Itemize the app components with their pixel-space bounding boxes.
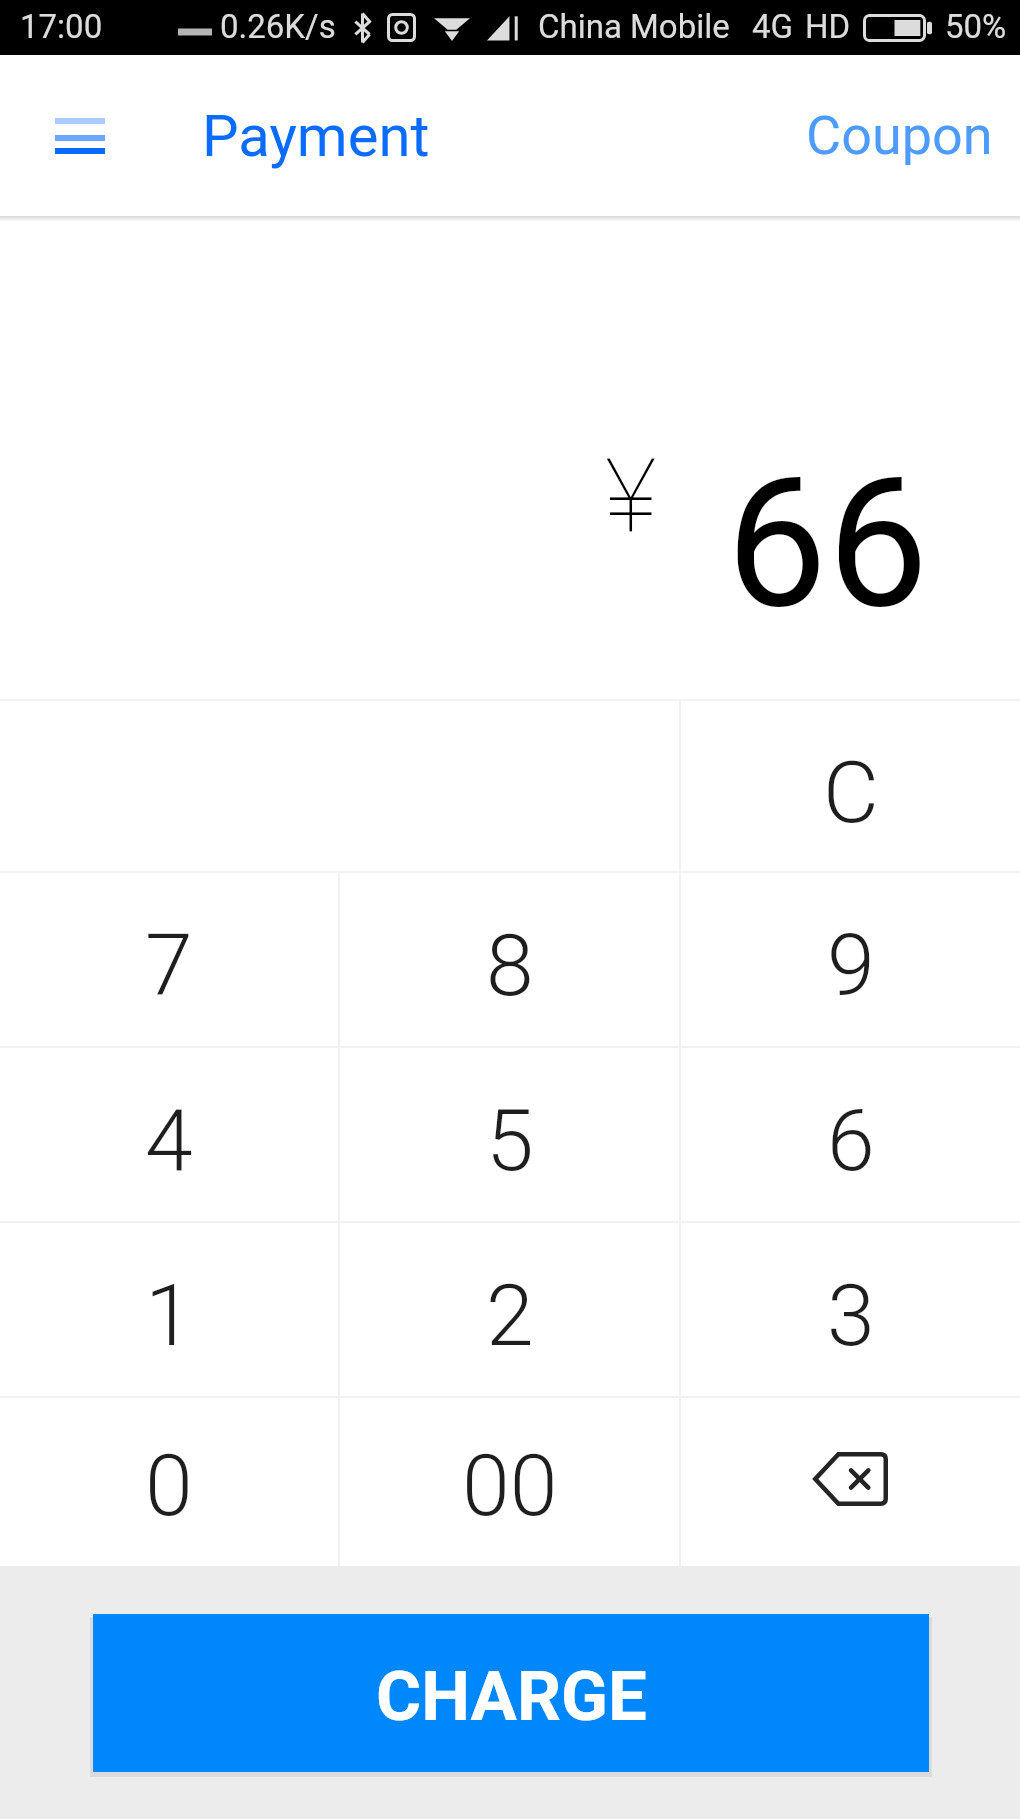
button[interactable]: C (681, 701, 1020, 871)
staticText: 8 (486, 915, 534, 1016)
staticText: C (823, 742, 879, 843)
staticText: 50% (945, 7, 1007, 46)
button[interactable]: 6 (681, 1048, 1020, 1221)
staticText: ¥ (605, 436, 657, 556)
button[interactable]: 00 (340, 1398, 679, 1566)
staticText: Coupon (806, 104, 993, 167)
button[interactable]: Open navigation menu (44, 100, 116, 172)
staticText: 2 (486, 1265, 534, 1366)
staticText: HD (805, 7, 851, 46)
button[interactable]: 7 (0, 873, 338, 1046)
staticText: 0 (145, 1435, 193, 1536)
staticText: 4G (752, 7, 794, 46)
button[interactable]: 4 (0, 1048, 338, 1221)
staticText: 6 (827, 1090, 875, 1191)
staticText: 1 (145, 1265, 193, 1366)
staticText: 4 (145, 1090, 193, 1191)
button[interactable]: Coupon (788, 86, 1011, 185)
staticText: 17:00 (20, 7, 103, 46)
button[interactable]: CHARGE (93, 1614, 929, 1772)
staticText: Payment (202, 102, 430, 170)
staticText: 3 (827, 1265, 875, 1366)
staticText: 0.26K/s (220, 7, 336, 46)
button[interactable]: 1 (0, 1223, 338, 1396)
staticText: 5 (486, 1090, 534, 1191)
button[interactable]: Backspace (681, 1398, 1020, 1566)
staticText: 9 (827, 915, 875, 1016)
button[interactable]: 9 (681, 873, 1020, 1046)
button[interactable]: 8 (340, 873, 679, 1046)
staticText: China Mobile (538, 7, 730, 46)
button[interactable]: 3 (681, 1223, 1020, 1396)
button[interactable]: 5 (340, 1048, 679, 1221)
staticText: CHARGE (376, 1656, 647, 1737)
staticText: 66 (726, 438, 929, 649)
staticText: 00 (462, 1435, 558, 1536)
button[interactable]: 0 (0, 1398, 338, 1566)
button[interactable]: 2 (340, 1223, 679, 1396)
staticText: 7 (145, 915, 193, 1016)
